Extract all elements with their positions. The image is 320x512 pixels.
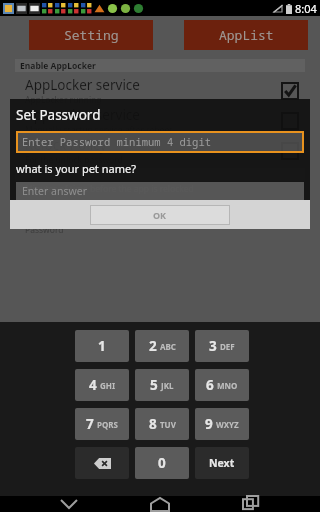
button[interactable]: 2: [135, 330, 189, 362]
button[interactable]: 5: [135, 369, 189, 401]
button[interactable]: Relock Policy: [0, 136, 320, 166]
staticText: 9: [205, 415, 213, 433]
staticText: ABC: [160, 341, 176, 352]
staticText: Manually startup service after reboot: [25, 124, 173, 136]
staticText: AppLocker running: [25, 94, 102, 106]
staticText: 4: [89, 376, 97, 394]
staticText: 3: [209, 337, 217, 355]
button[interactable]: AppList: [184, 20, 308, 50]
button[interactable]: Back / hide keyboard: [47, 496, 91, 512]
staticText: Enable AppLocker: [20, 60, 96, 72]
staticText: Enter Password minimum 4 digit: [22, 135, 211, 149]
staticText: what is your pet name?: [16, 161, 136, 176]
staticText: 7: [86, 415, 94, 433]
staticText: JKL: [161, 380, 174, 391]
staticText: AppLocker service: [25, 76, 140, 94]
staticText: Password: [25, 224, 64, 236]
staticText: 1: [98, 337, 106, 355]
button[interactable]: Setting: [29, 20, 153, 50]
button[interactable]: Toggle Relock Policy: [282, 143, 298, 159]
button[interactable]: 8: [135, 408, 189, 440]
staticText: 0: [158, 454, 166, 472]
button[interactable]: Backspace: [75, 447, 129, 479]
staticText: Next: [209, 456, 235, 470]
staticText: Enter answer: [22, 184, 88, 198]
staticText: TUV: [160, 419, 176, 430]
staticText: 8:04: [295, 1, 317, 16]
button[interactable]: Next: [195, 447, 249, 479]
button[interactable]: Toggle AppLocker service: [282, 83, 298, 99]
button[interactable]: Recent apps: [229, 496, 273, 512]
button[interactable]: 3: [195, 330, 249, 362]
button[interactable]: Enter Password minimum 4 digit: [16, 131, 304, 153]
button[interactable]: 6: [195, 369, 249, 401]
staticText: Minutes of time before the app is relock…: [25, 183, 194, 195]
staticText: Set Password: [16, 106, 101, 124]
staticText: 5: [150, 376, 158, 394]
staticText: DEF: [220, 341, 235, 352]
staticText: 8: [149, 415, 157, 433]
staticText: For the unlock password: [25, 154, 123, 166]
button[interactable]: Enter answer: [16, 182, 304, 200]
button[interactable]: 1: [75, 330, 129, 362]
staticText: Setting: [64, 26, 119, 44]
button[interactable]: 4: [75, 369, 129, 401]
button[interactable]: 9: [195, 408, 249, 440]
button[interactable]: OK: [90, 205, 230, 225]
staticText: PQRS: [97, 419, 118, 430]
staticText: 2: [149, 337, 157, 355]
button[interactable]: AppLocker service: [0, 106, 320, 136]
staticText: Relock Policy: [25, 136, 107, 154]
staticText: GHI: [100, 380, 116, 391]
staticText: OK: [153, 209, 167, 221]
button[interactable]: 0: [135, 447, 189, 479]
button[interactable]: Home: [138, 496, 182, 512]
staticText: WXYZ: [216, 419, 239, 430]
button[interactable]: 7: [75, 408, 129, 440]
button[interactable]: AppLocker service: [0, 76, 320, 106]
staticText: AppList: [219, 26, 274, 44]
staticText: AppLocker service: [25, 106, 140, 124]
staticText: 6: [206, 376, 214, 394]
staticText: MNO: [217, 380, 238, 391]
